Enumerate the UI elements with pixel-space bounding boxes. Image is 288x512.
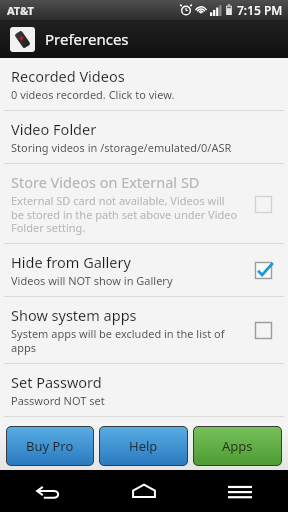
staticText: AT&T xyxy=(7,3,34,18)
button[interactable]: Apps xyxy=(193,426,282,466)
staticText: 0 videos recorded. Click to view. xyxy=(11,87,175,102)
staticText: Show system apps xyxy=(11,305,137,325)
staticText: Hide from Gallery xyxy=(11,252,131,272)
staticText: Preferences xyxy=(45,29,129,49)
staticText: 7:15 PM xyxy=(237,2,283,18)
staticText: Help xyxy=(129,437,158,455)
button[interactable]: Hide from Gallery xyxy=(0,244,288,296)
staticText: Buy Pro xyxy=(26,437,74,455)
button[interactable]: Show system apps xyxy=(0,297,288,363)
staticText: Storing videos in /storage/emulated/0/AS… xyxy=(11,140,232,155)
staticText: Password NOT set xyxy=(11,393,105,408)
button[interactable]: Set Password xyxy=(0,364,288,416)
button[interactable]: Recorded Videos xyxy=(0,58,288,110)
button[interactable]: Buy Pro xyxy=(6,426,94,466)
button[interactable]: Video Folder xyxy=(0,111,288,163)
button[interactable]: Back xyxy=(0,470,96,512)
staticText: External SD card not available, Videos w… xyxy=(11,193,238,235)
button[interactable]: Help xyxy=(99,426,188,466)
staticText: Set Password xyxy=(11,372,102,392)
staticText: Apps xyxy=(222,437,253,455)
staticText: Recorded Videos xyxy=(11,66,125,86)
staticText: System apps will be excluded in the list… xyxy=(11,326,238,355)
button[interactable]: Preferences xyxy=(0,20,288,58)
staticText: Store Videos on External SD xyxy=(11,172,200,192)
staticText: Videos will NOT show in Gallery xyxy=(11,273,173,288)
button[interactable]: Store Videos on External SD xyxy=(0,164,288,243)
staticText: Video Folder xyxy=(11,119,97,139)
button[interactable]: Recent apps xyxy=(192,470,288,512)
button[interactable]: Home xyxy=(96,470,192,512)
